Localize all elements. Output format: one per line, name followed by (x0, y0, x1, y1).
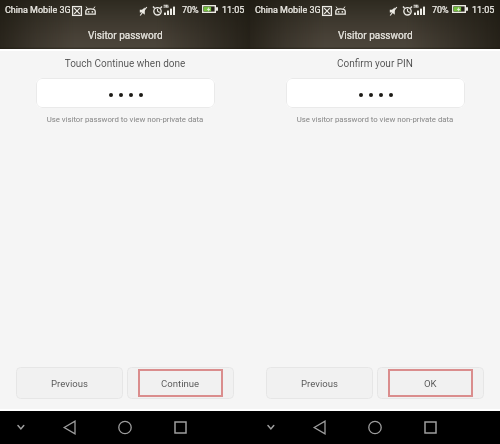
staticText: Visitor password (88, 30, 163, 42)
staticText: 11:05 (472, 5, 495, 16)
button[interactable]: Back (45, 411, 95, 444)
staticText: Continue (161, 378, 200, 389)
staticText: Use visitor password to view non-private… (0, 115, 250, 124)
staticText: Touch Continue when done (0, 58, 250, 70)
staticText: Use visitor password to view non-private… (250, 115, 500, 124)
button[interactable]: Home (345, 411, 400, 444)
staticText: China Mobile 3G (255, 5, 321, 16)
button[interactable]: Home (95, 411, 150, 444)
staticText: 70% (182, 5, 199, 16)
button[interactable]: Previous (266, 367, 373, 399)
button[interactable]: Recents (150, 411, 205, 444)
button[interactable] (286, 78, 465, 108)
button[interactable]: Hide keyboard (0, 411, 45, 444)
button[interactable]: Back (295, 411, 345, 444)
staticText: 11:05 (222, 5, 245, 16)
button[interactable]: OK (377, 367, 484, 399)
button[interactable]: Continue (127, 367, 234, 399)
staticText: Confirm your PIN (250, 58, 500, 70)
staticText: Previous (51, 378, 88, 389)
button[interactable]: Previous (16, 367, 123, 399)
staticText: China Mobile 3G (5, 5, 71, 16)
button[interactable]: Hide keyboard (250, 411, 295, 444)
staticText: 70% (432, 5, 449, 16)
staticText: Visitor password (338, 30, 413, 42)
button[interactable] (36, 78, 215, 108)
staticText: Previous (301, 378, 338, 389)
button[interactable]: Recents (400, 411, 455, 444)
staticText: OK (424, 378, 437, 389)
